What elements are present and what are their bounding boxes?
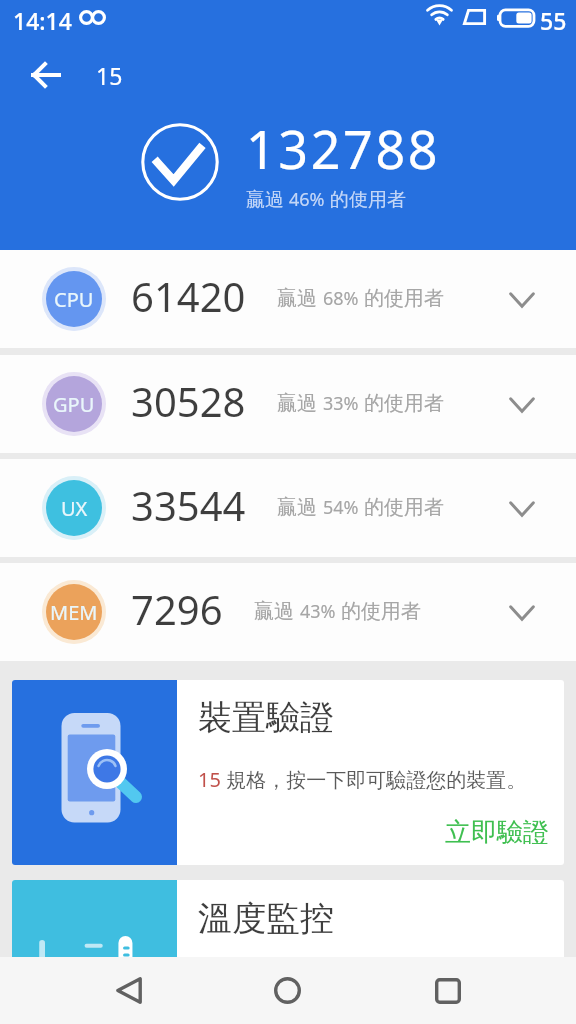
staticText: 贏過 xyxy=(277,284,323,311)
button[interactable]: CPU xyxy=(0,250,576,348)
staticText: 贏過 xyxy=(277,389,323,416)
staticText: 15 xyxy=(96,60,123,91)
staticText: 立即驗證 xyxy=(445,816,549,849)
staticText: 贏過 xyxy=(277,493,323,520)
button[interactable]: 溫度監控 xyxy=(12,880,564,960)
staticText: 的使用者 xyxy=(364,495,444,520)
staticText: GPU xyxy=(53,391,95,418)
staticText: 54% xyxy=(323,495,364,520)
staticText: CPU xyxy=(54,286,94,313)
staticText: 的使用者 xyxy=(364,286,444,311)
button[interactable]: UX xyxy=(0,459,576,557)
staticText: 15 xyxy=(198,766,221,793)
button[interactable]: MEM xyxy=(0,563,576,661)
button[interactable]: Home xyxy=(251,957,324,1024)
staticText: 46% xyxy=(289,187,330,212)
staticText: 的使用者 xyxy=(364,391,444,416)
button[interactable]: Recents xyxy=(411,957,484,1024)
button[interactable]: GPU xyxy=(0,355,576,453)
staticText: 33544 xyxy=(131,478,246,532)
staticText: 30528 xyxy=(131,374,246,428)
staticText: 贏過 xyxy=(254,597,300,624)
staticText: 55 xyxy=(540,5,567,36)
staticText: 的使用者 xyxy=(341,599,421,624)
staticText: 贏過 xyxy=(246,186,289,212)
staticText: 溫度監控 xyxy=(198,897,334,940)
staticText: 61420 xyxy=(131,269,246,323)
staticText: 規格，按一下即可驗證您的裝置。 xyxy=(221,766,527,793)
button[interactable]: Back xyxy=(92,957,165,1024)
staticText: 的使用者 xyxy=(330,188,406,212)
staticText: MEM xyxy=(50,599,98,626)
staticText: 132788 xyxy=(246,113,441,184)
staticText: 43% xyxy=(300,599,341,624)
button[interactable]: 裝置驗證 xyxy=(12,680,564,865)
staticText: 14:14 xyxy=(13,5,72,36)
staticText: 68% xyxy=(323,286,364,311)
staticText: UX xyxy=(61,495,88,522)
staticText: 33% xyxy=(323,391,364,416)
staticText: 裝置驗證 xyxy=(198,696,334,739)
button[interactable]: Back xyxy=(14,44,76,106)
staticText: 7296 xyxy=(131,582,223,636)
